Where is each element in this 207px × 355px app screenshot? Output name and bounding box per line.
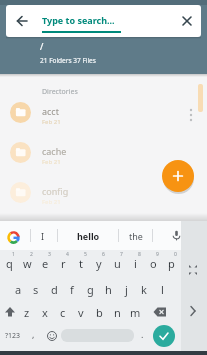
staticText: m xyxy=(130,305,141,320)
staticText: 0 xyxy=(174,251,177,258)
button[interactable]: 9 xyxy=(147,244,167,264)
staticText: s xyxy=(33,282,39,297)
button[interactable]: t xyxy=(71,253,91,273)
staticText: j xyxy=(125,282,128,297)
button[interactable]: config xyxy=(0,181,207,221)
button[interactable]: I xyxy=(33,226,53,246)
staticText: e xyxy=(42,256,49,271)
staticText: 2 xyxy=(30,251,33,258)
button[interactable]: s xyxy=(26,279,46,299)
staticText: 7 xyxy=(120,251,123,258)
button[interactable] xyxy=(0,221,181,250)
staticText: the xyxy=(129,230,143,242)
button[interactable]: Type to search... xyxy=(6,5,201,37)
staticText: hello xyxy=(77,230,100,242)
button[interactable]: acct xyxy=(0,101,207,141)
staticText: x xyxy=(42,305,48,320)
staticText: . xyxy=(141,328,144,340)
staticText: 21 Folders 37 Files xyxy=(40,56,96,65)
button[interactable]: k xyxy=(134,279,154,299)
staticText: 4 xyxy=(66,251,69,258)
staticText: , xyxy=(32,328,35,340)
staticText: 1 xyxy=(12,251,15,258)
button[interactable]: y xyxy=(89,253,109,273)
button[interactable]: 8 xyxy=(129,244,149,264)
staticText: v xyxy=(78,305,84,320)
staticText: u xyxy=(114,256,121,271)
staticText: 6 xyxy=(102,251,105,258)
staticText: q xyxy=(6,256,13,271)
staticText: b xyxy=(96,305,103,320)
staticText: Feb 21 xyxy=(42,158,61,166)
button[interactable]: v xyxy=(71,302,91,322)
staticText: 8 xyxy=(138,251,141,258)
staticText: z xyxy=(24,305,30,320)
button[interactable]: 3 xyxy=(39,244,59,264)
staticText: n xyxy=(114,305,121,320)
button[interactable]: 4 xyxy=(57,244,77,264)
button[interactable]: r xyxy=(53,253,73,273)
staticText: config xyxy=(42,185,69,197)
staticText: I xyxy=(41,230,45,242)
button[interactable]: e xyxy=(35,253,55,273)
staticText: c xyxy=(60,305,66,320)
button[interactable]: w xyxy=(17,253,37,273)
button[interactable]: q xyxy=(0,253,19,273)
staticText: g xyxy=(87,282,94,297)
staticText: p xyxy=(168,256,175,271)
button[interactable]: h xyxy=(98,279,118,299)
button[interactable]: f xyxy=(62,279,82,299)
button[interactable]: o xyxy=(143,253,163,273)
staticText: f xyxy=(70,282,74,297)
staticText: 9 xyxy=(156,251,159,258)
button[interactable]: , xyxy=(23,324,43,344)
button[interactable]: 5 xyxy=(75,244,95,264)
button[interactable]: x xyxy=(35,302,55,322)
button[interactable]: g xyxy=(80,279,100,299)
staticText: 3 xyxy=(48,251,51,258)
button[interactable]: n xyxy=(107,302,127,322)
staticText: t xyxy=(79,256,83,271)
button[interactable] xyxy=(61,329,134,342)
staticText: Feb 21 xyxy=(42,198,61,206)
button[interactable]: p xyxy=(161,253,181,273)
staticText: h xyxy=(105,282,112,297)
button[interactable]: c xyxy=(53,302,73,322)
button[interactable]: z xyxy=(17,302,37,322)
button[interactable]: ?123 xyxy=(3,326,23,346)
button[interactable]: j xyxy=(116,279,136,299)
staticText: Directories xyxy=(42,87,78,97)
staticText: r xyxy=(61,256,66,271)
button[interactable]: u xyxy=(107,253,127,273)
staticText: d xyxy=(51,282,58,297)
staticText: a xyxy=(15,282,22,297)
staticText: acct xyxy=(42,105,59,117)
staticText: ?123 xyxy=(5,331,21,341)
staticText: k xyxy=(141,282,147,297)
button[interactable]: 7 xyxy=(111,244,131,264)
staticText: cache xyxy=(42,145,67,157)
button[interactable]: d xyxy=(44,279,64,299)
button[interactable]: l xyxy=(152,279,172,299)
staticText: 5 xyxy=(84,251,87,258)
staticText: Type to search... xyxy=(42,14,115,26)
button[interactable]: a xyxy=(8,279,28,299)
button[interactable] xyxy=(153,325,175,347)
button[interactable]: hello xyxy=(63,226,113,246)
button[interactable] xyxy=(162,160,194,192)
button[interactable]: 6 xyxy=(93,244,113,264)
button[interactable]: 0 xyxy=(165,244,185,264)
button[interactable]: b xyxy=(89,302,109,322)
staticText: i xyxy=(134,256,137,271)
button[interactable]: 1 xyxy=(3,244,23,264)
staticText: / xyxy=(40,40,44,52)
button[interactable]: the xyxy=(121,226,151,246)
button[interactable]: m xyxy=(125,302,145,322)
button[interactable]: cache xyxy=(0,141,207,181)
button[interactable]: . xyxy=(132,324,152,344)
staticText: w xyxy=(23,256,32,271)
button[interactable]: 2 xyxy=(21,244,41,264)
staticText: Feb 21 xyxy=(42,118,61,126)
staticText: l xyxy=(161,282,164,297)
button[interactable]: i xyxy=(125,253,145,273)
